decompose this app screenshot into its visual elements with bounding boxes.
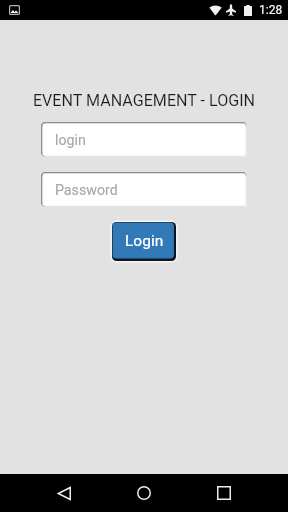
button[interactable]: Home — [124, 474, 164, 512]
staticText: login — [55, 132, 86, 149]
staticText: 1:28 — [259, 3, 283, 17]
button[interactable]: Password — [41, 172, 247, 207]
staticText: Password — [55, 182, 118, 199]
staticText: Login — [125, 232, 164, 250]
button[interactable]: Login — [112, 222, 176, 261]
staticText: EVENT MANAGEMENT - LOGIN — [0, 91, 288, 110]
button[interactable]: Recent apps — [204, 474, 244, 512]
button[interactable]: login — [41, 122, 247, 157]
button[interactable]: Back — [44, 474, 84, 512]
